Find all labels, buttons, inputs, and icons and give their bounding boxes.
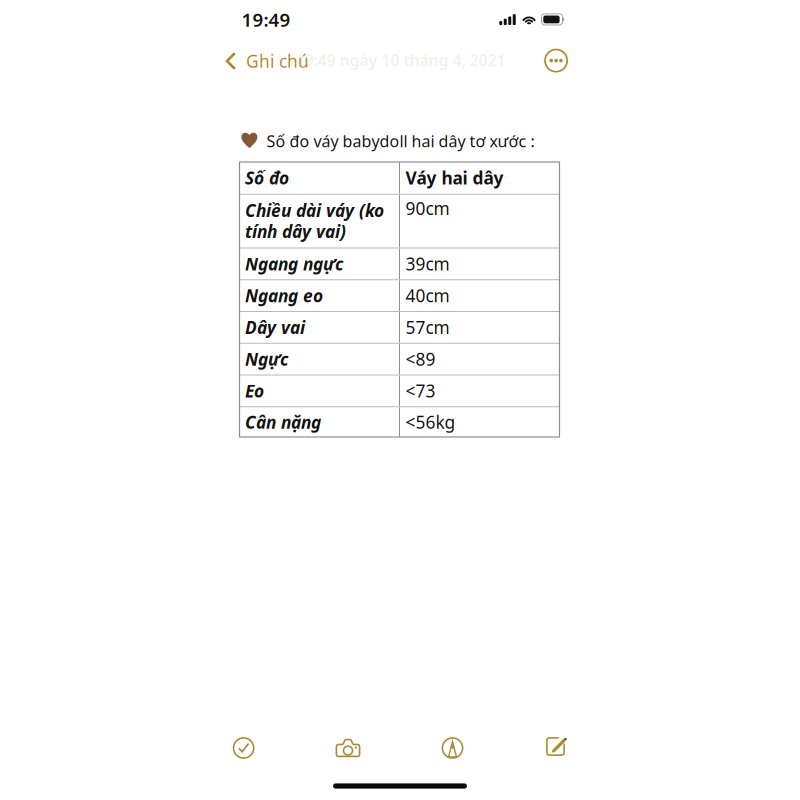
staticText: Ngang ngực <box>245 252 343 275</box>
button[interactable]: New note <box>529 725 585 769</box>
staticText: tính dây vai) <box>245 220 346 243</box>
staticText: 19:49 ngày 10 tháng 4, 2021 <box>295 49 505 71</box>
button[interactable]: Camera <box>320 726 376 770</box>
staticText: Cân nặng <box>245 411 321 434</box>
staticText: Váy hai dây <box>405 166 503 189</box>
staticText: Ngang eo <box>245 284 323 307</box>
staticText: 40cm <box>405 284 449 307</box>
staticText: <89 <box>405 348 435 371</box>
staticText: Ghi chú <box>246 49 309 72</box>
staticText: <56kg <box>405 411 455 434</box>
button[interactable]: Checklist <box>216 726 272 770</box>
staticText: 39cm <box>405 252 449 275</box>
staticText: 57cm <box>405 316 449 339</box>
staticText: Số đo váy babydoll hai dây tơ xước : <box>266 130 534 152</box>
button[interactable]: More options <box>535 40 577 82</box>
staticText: Chiều dài váy (ko <box>245 199 384 222</box>
staticText: Số đo <box>245 166 289 189</box>
staticText: Eo <box>245 379 264 402</box>
staticText: 90cm <box>405 197 449 220</box>
staticText: Ngực <box>245 348 288 371</box>
button[interactable]: Markup <box>424 726 480 770</box>
staticText: Dây vai <box>245 316 305 339</box>
staticText: <73 <box>405 379 435 402</box>
button[interactable]: Ghi chú <box>225 40 315 82</box>
staticText: 19:49 <box>242 7 291 32</box>
